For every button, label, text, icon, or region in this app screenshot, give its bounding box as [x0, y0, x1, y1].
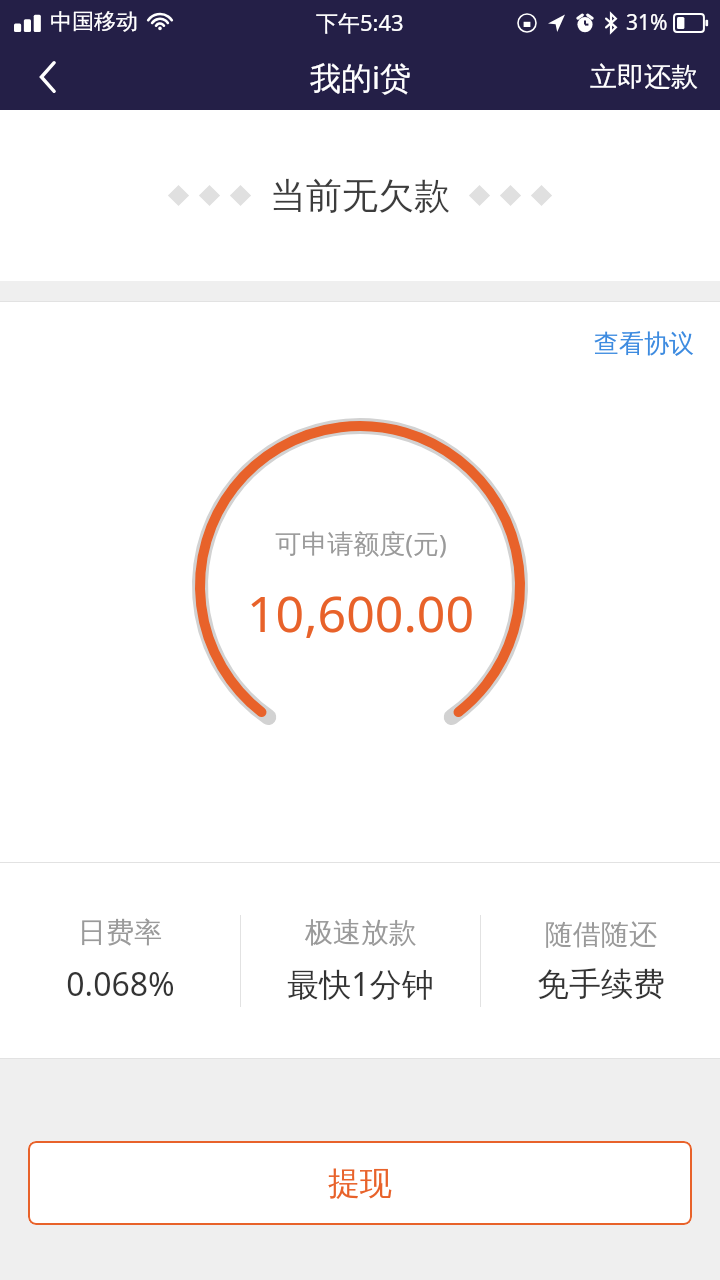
staticText: 极速放款 [305, 915, 417, 950]
staticText: 0.068% [66, 962, 175, 1006]
staticText: 我的i贷 [310, 56, 411, 98]
staticText: 下午5:43 [316, 7, 404, 37]
button[interactable]: 日费率 [0, 915, 240, 1006]
button[interactable]: 提现 [28, 1141, 692, 1225]
staticText: 当前无欠款 [270, 173, 450, 218]
staticText: 日费率 [78, 915, 162, 950]
staticText: 随借随还 [545, 917, 657, 952]
button[interactable]: 极速放款 [241, 915, 480, 1006]
staticText: 最快1分钟 [287, 962, 434, 1006]
button[interactable]: Back [0, 44, 96, 110]
staticText: 10,600.00 [247, 579, 474, 647]
staticText: 31% [626, 8, 668, 37]
staticText: 查看协议 [594, 328, 694, 359]
staticText: 中国移动 [50, 8, 138, 36]
staticText: 免手续费 [537, 964, 665, 1004]
staticText: 提现 [328, 1163, 392, 1203]
staticText: 立即还款 [590, 60, 698, 94]
button[interactable]: 随借随还 [481, 917, 720, 1004]
button[interactable]: 查看协议 [590, 324, 698, 363]
button[interactable]: 立即还款 [568, 44, 720, 110]
staticText: 可申请额度(元) [275, 525, 447, 561]
